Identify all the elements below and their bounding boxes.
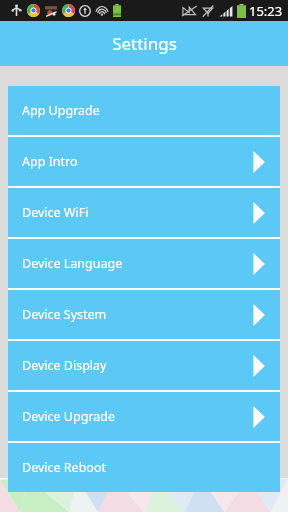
button[interactable]: Device Language [8,239,280,288]
staticText: Device System [22,306,107,323]
other: Open Device WiFi [252,202,266,224]
staticText: Device Language [22,255,123,272]
button[interactable]: App Intro [8,137,280,186]
other: Open Device Upgrade [252,406,266,428]
staticText: Device Display [22,357,107,374]
button[interactable]: Device Display [8,341,280,390]
button[interactable]: Device WiFi [8,188,280,237]
button[interactable]: App Upgrade [8,86,280,135]
staticText: Settings [112,32,177,55]
staticText: 15:23 [249,2,283,20]
other: Open Device Language [252,253,266,275]
other: Open App Intro [252,151,266,173]
staticText: App Upgrade [22,102,100,119]
other: Open Device Display [252,355,266,377]
staticText: Device Upgrade [22,408,115,425]
staticText: Device WiFi [22,204,89,221]
button[interactable]: Device Reboot [8,443,280,492]
button[interactable]: Device Upgrade [8,392,280,441]
staticText: App Intro [22,153,78,170]
staticText: Device Reboot [22,459,106,476]
button[interactable]: Device System [8,290,280,339]
other: Open Device System [252,304,266,326]
